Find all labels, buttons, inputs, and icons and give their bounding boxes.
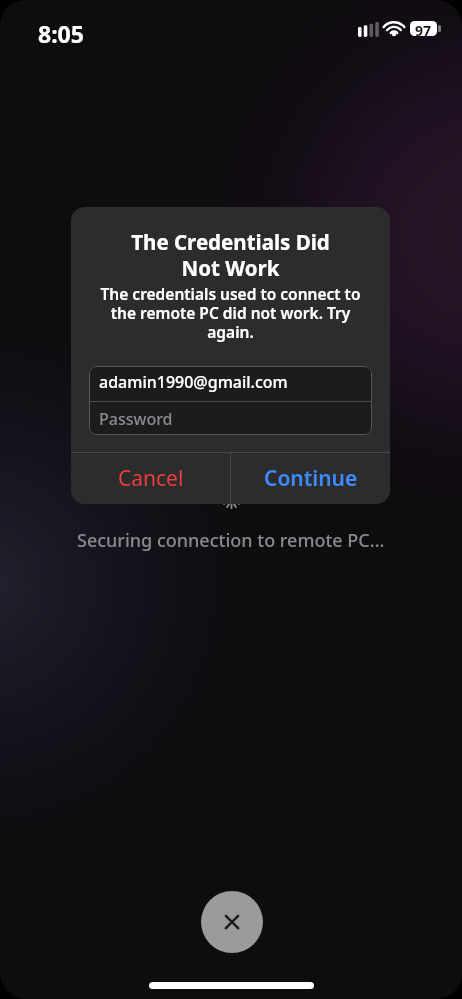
button[interactable]: Close (201, 891, 263, 953)
button[interactable]: adamin1990@gmail.com (89, 366, 372, 401)
staticText: The credentials used to connect to the r… (88, 283, 373, 343)
staticText: Continue (264, 464, 358, 493)
button[interactable]: Continue (231, 453, 390, 504)
staticText: Password (99, 408, 173, 430)
button[interactable]: Cancel (71, 453, 230, 504)
staticText: Securing connection to remote PC... (77, 528, 385, 553)
staticText: 97 (415, 21, 432, 36)
staticText: The Credentials Did Not Work (85, 228, 376, 282)
staticText: Cancel (118, 464, 184, 493)
button[interactable]: Password (89, 402, 372, 435)
staticText: 8:05 (38, 18, 84, 49)
staticText: adamin1990@gmail.com (99, 371, 288, 393)
